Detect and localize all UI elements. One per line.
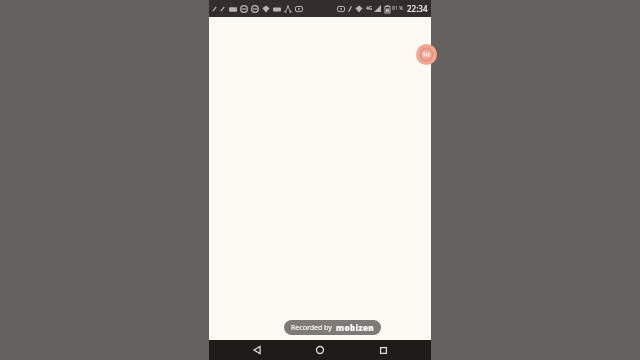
button[interactable]: Mobizen recorder <box>416 44 437 65</box>
staticText: 81 % <box>392 5 404 12</box>
button[interactable]: Back <box>242 340 272 360</box>
staticText: 22:34 <box>407 3 428 14</box>
staticText: mobizen <box>336 322 374 333</box>
staticText: 4G <box>366 5 373 12</box>
button[interactable]: Home <box>305 340 335 360</box>
staticText: Recorded by <box>291 323 332 333</box>
button[interactable]: Recent apps <box>368 340 398 360</box>
